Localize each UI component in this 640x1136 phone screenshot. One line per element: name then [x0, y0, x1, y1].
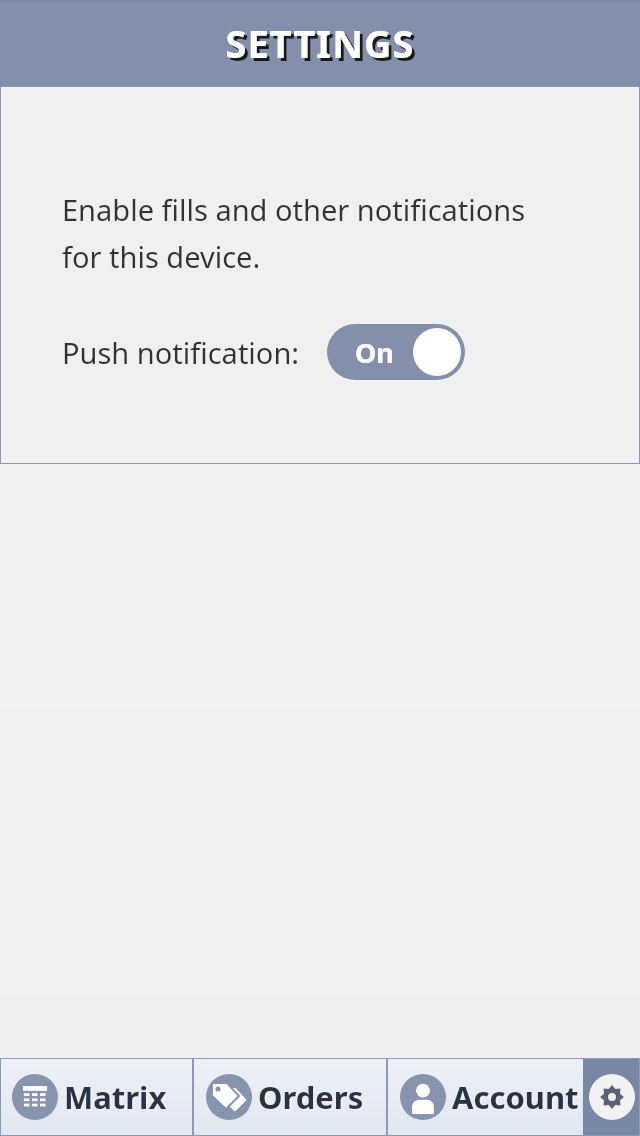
staticText: SETTINGS	[3, 20, 640, 72]
staticText: SETTINGS	[0, 17, 640, 69]
staticText: Enable fills and other notifications	[62, 190, 526, 229]
staticText: Push notification:	[62, 333, 300, 372]
button[interactable]: Orders	[194, 1058, 386, 1136]
staticText: Orders	[258, 1076, 364, 1118]
staticText: Orders	[260, 1078, 366, 1120]
staticText: for this device.	[62, 237, 261, 276]
button[interactable]: Matrix	[0, 1058, 192, 1136]
staticText: Matrix	[66, 1078, 169, 1120]
staticText: Account	[454, 1078, 581, 1120]
button[interactable]: On	[327, 324, 465, 380]
staticText: On	[355, 334, 394, 371]
button[interactable]: Account	[388, 1058, 583, 1136]
button[interactable]: Settings	[583, 1058, 640, 1136]
staticText: Matrix	[64, 1076, 167, 1118]
staticText: Account	[452, 1076, 579, 1118]
